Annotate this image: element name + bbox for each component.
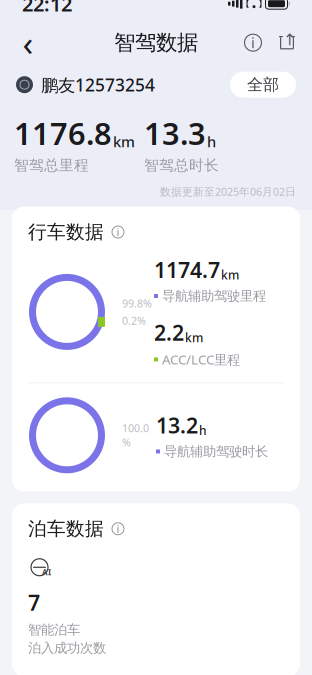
- staticText: 22:12: [22, 0, 72, 17]
- staticText: AI: [42, 567, 51, 577]
- staticText: 导航辅助驾驶时长: [164, 443, 268, 460]
- staticText: 泊入成功次数: [28, 640, 106, 656]
- staticText: 0.2%: [122, 313, 146, 328]
- staticText: 2.2: [154, 318, 184, 346]
- button[interactable]: Back: [8, 23, 48, 63]
- staticText: 鹏友12573254: [41, 73, 155, 96]
- staticText: i: [116, 522, 119, 536]
- staticText: 智驾数据: [114, 30, 198, 56]
- staticText: 智能泊车: [28, 622, 80, 638]
- button[interactable]: 全部: [230, 72, 296, 98]
- staticText: 泊车数据: [28, 517, 104, 540]
- staticText: ‹: [22, 20, 33, 66]
- staticText: i: [116, 225, 119, 239]
- staticText: 智驾总里程: [14, 156, 89, 174]
- staticText: 导航辅助驾驶里程: [162, 288, 266, 304]
- staticText: 100.0%: [122, 421, 149, 449]
- staticText: ACC/LCC里程: [162, 350, 240, 368]
- staticText: 1174.7: [154, 255, 220, 284]
- staticText: 7: [28, 588, 40, 616]
- staticText: h: [199, 422, 207, 438]
- button[interactable]: About 行车数据: [109, 223, 127, 241]
- staticText: 数据更新至2025年06月02日: [160, 184, 296, 199]
- button[interactable]: Share: [270, 23, 304, 63]
- staticText: 99.8%: [122, 296, 152, 310]
- staticText: 13.2: [156, 411, 198, 439]
- button[interactable]: Info: [236, 23, 270, 63]
- staticText: km: [221, 267, 239, 283]
- staticText: 1176.8: [14, 113, 112, 153]
- staticText: km: [113, 132, 135, 151]
- staticText: 智驾总时长: [144, 156, 219, 174]
- staticText: ↑: [283, 31, 296, 49]
- staticText: h: [207, 132, 216, 151]
- staticText: km: [185, 330, 203, 345]
- staticText: i: [251, 33, 255, 52]
- staticText: 13.3: [144, 113, 206, 153]
- button[interactable]: About 泊车数据: [109, 520, 127, 538]
- staticText: 全部: [247, 75, 279, 94]
- staticText: 行车数据: [28, 221, 104, 243]
